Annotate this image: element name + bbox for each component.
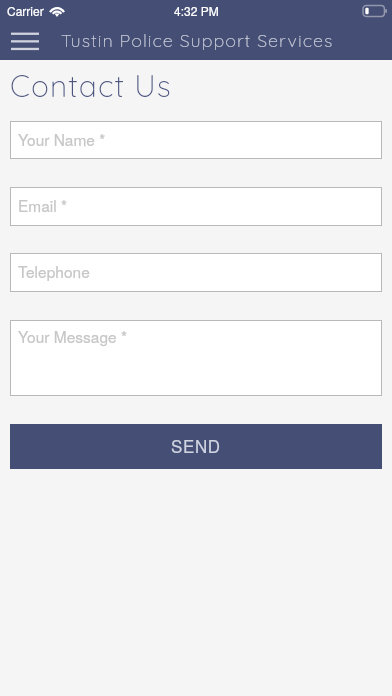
button[interactable]: Email * xyxy=(10,187,382,226)
button[interactable]: Your Name * xyxy=(10,121,382,159)
button[interactable]: SEND xyxy=(10,424,382,469)
staticText: Tustin Police Support Services xyxy=(61,29,334,52)
button[interactable]: Telephone xyxy=(10,253,382,292)
staticText: Telephone xyxy=(18,260,90,282)
staticText: Your Message * xyxy=(18,325,127,347)
staticText: Your Name * xyxy=(18,128,106,150)
staticText: Email * xyxy=(18,194,68,216)
staticText: SEND xyxy=(171,433,221,457)
staticText: 4:32 PM xyxy=(174,2,219,19)
button[interactable]: Open navigation menu xyxy=(0,22,49,60)
button[interactable]: Your Message * xyxy=(10,320,382,396)
staticText: Contact Us xyxy=(10,67,172,105)
staticText: Carrier xyxy=(7,2,44,19)
